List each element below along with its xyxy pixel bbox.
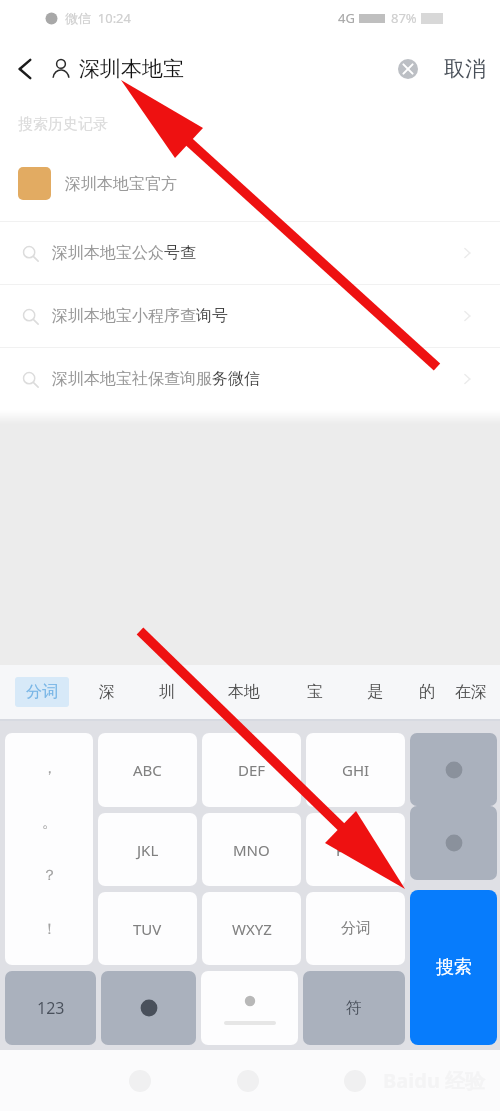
staticText: 搜索	[436, 956, 472, 979]
staticText: 深圳本地宝小程序查	[52, 306, 196, 326]
staticText: 深	[99, 682, 115, 702]
button[interactable]: 宝	[307, 665, 323, 719]
staticText: 87%	[391, 9, 417, 27]
staticText: 微信 10:24	[65, 9, 131, 27]
staticText: 在深	[455, 682, 487, 702]
button[interactable]: 在深	[455, 665, 487, 719]
staticText: 的	[419, 682, 435, 702]
staticText: 务微信	[212, 369, 260, 389]
staticText: Baidu 经验	[383, 1067, 486, 1094]
button[interactable]: Back	[0, 36, 50, 102]
button[interactable]: Back	[120, 1061, 160, 1101]
button[interactable]: Enter	[410, 806, 497, 880]
staticText: 本地	[228, 682, 260, 702]
staticText: PQRS	[336, 840, 375, 860]
staticText: 4G	[338, 9, 355, 27]
button[interactable]: Clear	[388, 49, 428, 89]
staticText: 123	[37, 997, 65, 1019]
button[interactable]: MNO	[202, 813, 301, 886]
staticText: 搜索历史记录	[18, 115, 108, 134]
button[interactable]: Home	[228, 1061, 268, 1101]
button[interactable]: TUV	[98, 892, 197, 965]
staticText: 取消	[444, 56, 486, 82]
button[interactable]: 深圳本地宝公众	[0, 222, 500, 284]
staticText: 是	[367, 682, 383, 702]
button[interactable]: GHI	[306, 733, 405, 807]
button[interactable]: 是	[367, 665, 383, 719]
button[interactable]: PQRS	[306, 813, 405, 886]
button[interactable]: Space	[201, 971, 298, 1045]
staticText: ABC	[133, 760, 162, 780]
staticText: WXYZ	[232, 919, 272, 939]
button[interactable]: Symbols	[303, 971, 405, 1045]
staticText: 深圳本地宝公众	[52, 243, 164, 263]
staticText: 深圳本地宝	[79, 56, 184, 82]
staticText: 分词	[26, 682, 58, 702]
staticText: 询号	[196, 306, 228, 326]
staticText: 符	[346, 998, 362, 1018]
button[interactable]: Backspace	[410, 733, 497, 806]
staticText: JKL	[137, 840, 159, 860]
button[interactable]: ABC	[98, 733, 197, 807]
staticText: GHI	[342, 760, 370, 780]
staticText: MNO	[233, 840, 270, 860]
button[interactable]: 圳	[159, 665, 175, 719]
staticText: 分词	[341, 919, 371, 938]
button[interactable]: 本地	[228, 665, 260, 719]
staticText: DEF	[238, 760, 266, 780]
button[interactable]: 的	[419, 665, 435, 719]
staticText: 深圳本地宝官方	[65, 174, 177, 194]
button[interactable]: 搜索	[410, 890, 497, 1045]
button[interactable]: Numbers	[5, 971, 96, 1045]
staticText: 。	[42, 813, 57, 832]
button[interactable]: Punctuation	[5, 733, 93, 965]
staticText: ！	[42, 920, 57, 939]
button[interactable]: 分词	[15, 677, 69, 707]
button[interactable]: 深圳本地宝社保查询服	[0, 348, 500, 410]
staticText: 深圳本地宝社保查询服	[52, 369, 212, 389]
staticText: 宝	[307, 682, 323, 702]
button[interactable]: Switch language	[101, 971, 196, 1045]
staticText: ，	[42, 759, 57, 778]
button[interactable]: 深圳本地宝小程序查	[0, 285, 500, 347]
button[interactable]: 分词	[306, 892, 405, 965]
button[interactable]: 深圳本地宝官方	[0, 146, 500, 221]
button[interactable]: WXYZ	[202, 892, 301, 965]
staticText: 号查	[164, 243, 196, 263]
button[interactable]: JKL	[98, 813, 197, 886]
button[interactable]: 深	[99, 665, 115, 719]
staticText: ？	[42, 866, 57, 885]
button[interactable]: 取消	[437, 36, 500, 102]
staticText: TUV	[133, 919, 162, 939]
staticText: 圳	[159, 682, 175, 702]
button[interactable]: DEF	[202, 733, 301, 807]
button[interactable]: Recents	[335, 1061, 375, 1101]
